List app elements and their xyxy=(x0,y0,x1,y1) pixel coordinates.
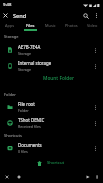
staticText: Documents xyxy=(18,142,42,148)
button[interactable]: Internal storage xyxy=(0,58,103,74)
staticText: Files xyxy=(26,23,35,28)
button[interactable]: File root xyxy=(0,99,103,115)
staticText: Send xyxy=(13,12,27,20)
button[interactable]: Files xyxy=(20,21,40,31)
button[interactable]: More options for Documents xyxy=(90,143,101,154)
button[interactable]: Search xyxy=(80,10,91,21)
button[interactable]: Mount Folder xyxy=(40,73,77,84)
staticText: TShot DENIC xyxy=(18,117,45,123)
button[interactable]: Hide keyboard xyxy=(2,172,11,181)
button[interactable]: More options xyxy=(91,10,102,21)
staticText: Shortcut xyxy=(47,160,65,166)
button[interactable]: Apps xyxy=(0,21,20,31)
staticText: Mount Folder xyxy=(43,75,74,82)
button[interactable]: Switch keyboard xyxy=(14,172,23,181)
button[interactable]: TShot DENIC xyxy=(0,115,103,131)
staticText: Music xyxy=(45,23,56,28)
button[interactable]: More options for AE7B-7E4A xyxy=(90,45,101,56)
button[interactable]: Video xyxy=(82,21,103,31)
staticText: 0 files xyxy=(18,149,28,154)
staticText: Folder xyxy=(18,108,29,113)
staticText: Storage xyxy=(4,34,19,39)
button[interactable]: Home xyxy=(92,172,101,181)
staticText: Apps xyxy=(5,23,15,28)
staticText: Storage xyxy=(18,51,32,56)
button[interactable]: Back xyxy=(83,172,92,181)
button[interactable]: Documents xyxy=(0,140,103,156)
button[interactable]: Music xyxy=(40,21,61,31)
staticText: Received files xyxy=(18,124,41,129)
staticText: AE7B-7E4A xyxy=(18,44,41,50)
button[interactable]: Close xyxy=(0,10,11,21)
staticText: Video xyxy=(87,23,98,28)
button[interactable]: Photos xyxy=(61,21,82,31)
staticText: Photos xyxy=(65,23,78,28)
button[interactable]: More options for File root xyxy=(90,102,101,113)
staticText: Internal storage xyxy=(18,60,52,66)
staticText: Storage xyxy=(18,67,32,72)
staticText: Folder xyxy=(4,92,16,97)
button[interactable]: More options for TShot DENIC xyxy=(90,118,101,129)
button[interactable]: Shortcut xyxy=(37,158,65,168)
staticText: Shortcuts xyxy=(4,133,22,138)
button[interactable]: AE7B-7E4A xyxy=(0,42,103,58)
staticText: 9:48 xyxy=(3,2,12,8)
button[interactable]: More options for Internal storage xyxy=(90,61,101,72)
staticText: File root xyxy=(18,101,35,107)
